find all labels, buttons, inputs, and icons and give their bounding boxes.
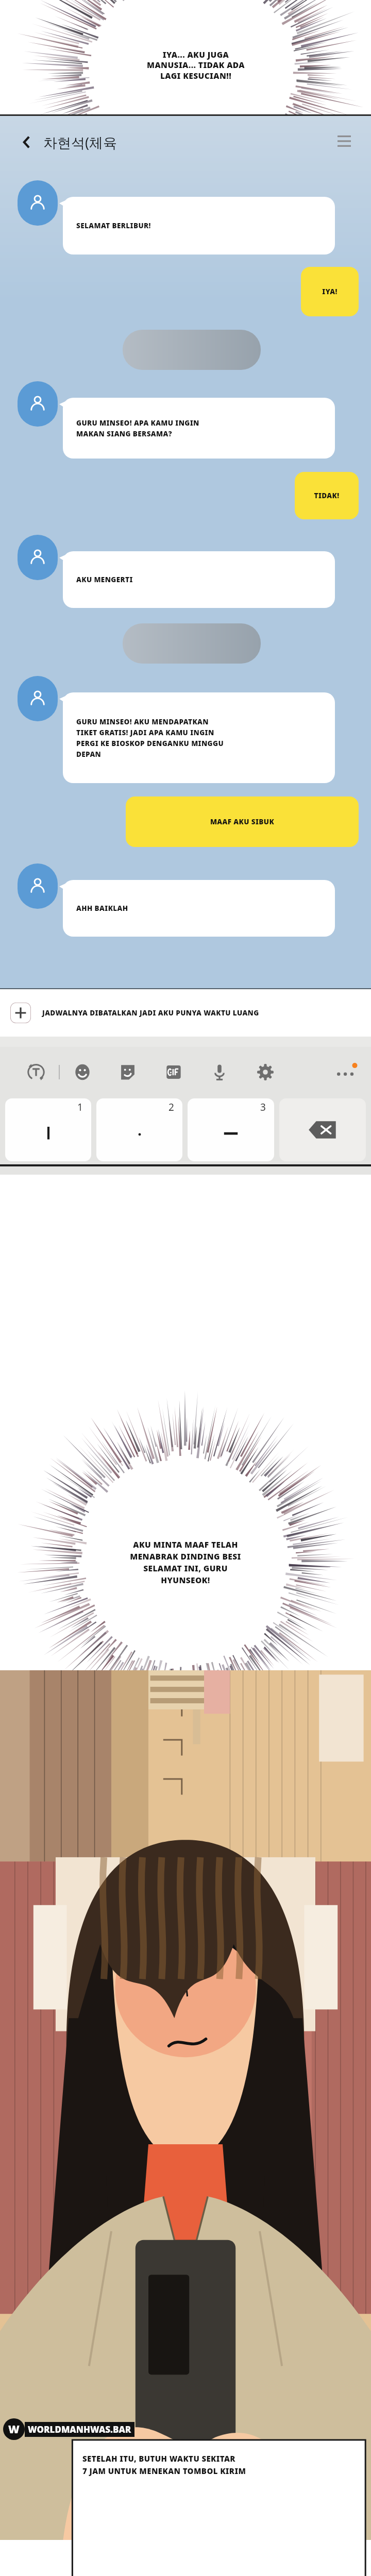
staticText: MAAF AKU SIBUK [126,817,359,826]
staticText: WORLDMANHWAS.BAR [28,2424,131,2435]
staticText: W [8,2422,20,2437]
staticText: IYA! [301,287,359,296]
button[interactable]: SELAMAT BERLIBUR! [63,197,335,255]
button[interactable]: GIF [150,1055,196,1089]
button[interactable]: Voice input [196,1055,242,1089]
button[interactable]: 3 [188,1098,274,1161]
button[interactable]: Back [15,131,38,154]
button[interactable]: Backspace [279,1098,366,1161]
staticText: AKU MINTA MAAF TELAH MENABRAK DINDING BE… [62,1539,309,1586]
button[interactable]: Menu [333,131,356,154]
button[interactable]: AKU MENGERTI [63,551,335,608]
staticText: IYA... AKU JUGA MANUSIA... TIDAK ADA LAG… [52,49,340,81]
staticText: 1 [77,1100,83,1114]
button[interactable]: GURU MINSEO! AKU MENDAPATKAN TIKET GRATI… [63,692,335,783]
staticText: JADWALNYA DIBATALKAN JADI AKU PUNYA WAKT… [42,1008,361,1018]
button[interactable]: 1 [5,1098,91,1161]
button[interactable]: GURU MINSEO! APA KAMU INGIN MAKAN SIANG … [63,398,335,459]
button[interactable]: IYA! [301,267,359,316]
button[interactable]: Add attachment [10,1003,31,1023]
staticText: 2 [168,1100,174,1114]
button[interactable]: Stickers [105,1055,150,1089]
button[interactable]: MAAF AKU SIBUK [126,796,359,847]
button[interactable]: TIDAK! [295,472,359,519]
staticText: TIDAK! [295,491,359,500]
button[interactable]: Settings [242,1055,288,1089]
staticText: GURU MINSEO! AKU MENDAPATKAN TIKET GRATI… [76,717,322,759]
staticText: AHH BAIKLAH [76,904,322,913]
button[interactable]: Translate [13,1055,59,1089]
staticText: SELAMAT BERLIBUR! [76,221,322,230]
staticText: AKU MENGERTI [76,575,322,584]
staticText: GURU MINSEO! APA KAMU INGIN MAKAN SIANG … [76,418,322,438]
button[interactable]: 2 [96,1098,182,1161]
staticText: 차현석(체육 [43,133,117,152]
staticText: 3 [260,1100,266,1114]
button[interactable]: AHH BAIKLAH [63,880,335,937]
button[interactable]: More options [334,1060,358,1084]
staticText: SETELAH ITU, BUTUH WAKTU SEKITAR 7 JAM U… [82,2453,345,2476]
button[interactable]: Emoji [60,1055,105,1089]
